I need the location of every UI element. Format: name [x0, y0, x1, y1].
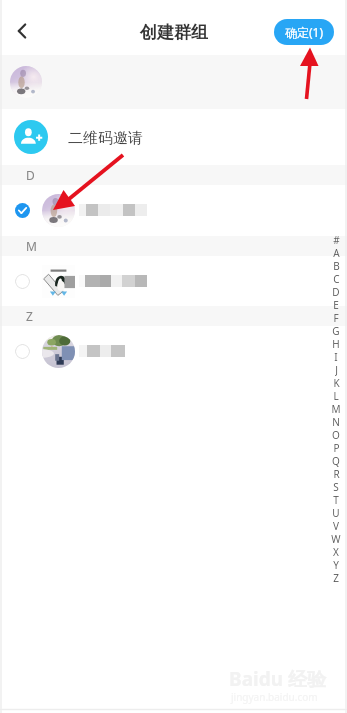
button[interactable]: Back [6, 15, 38, 47]
staticText: M [331, 402, 341, 415]
staticText: Baidu 经验 [229, 666, 326, 692]
button[interactable]: C [328, 272, 344, 285]
button[interactable]: A [328, 246, 344, 259]
staticText: Z [26, 308, 33, 324]
staticText: # [333, 233, 340, 246]
staticText: C [333, 272, 340, 285]
staticText: A [333, 246, 340, 259]
staticText: E [333, 298, 339, 311]
button[interactable]: R [328, 467, 344, 480]
button[interactable]: 二维码邀请 [0, 109, 347, 165]
button[interactable]: N [328, 415, 344, 428]
staticText: L [333, 389, 339, 402]
button[interactable]: J [328, 363, 344, 376]
button[interactable]: G [328, 324, 344, 337]
staticText: Y [333, 558, 339, 571]
staticText: K [333, 376, 340, 389]
button[interactable]: W [328, 532, 344, 545]
staticText: D [26, 167, 35, 183]
button[interactable]: T [328, 493, 344, 506]
button[interactable]: S [328, 480, 344, 493]
button[interactable]: F [328, 311, 344, 324]
button[interactable]: O [328, 428, 344, 441]
button[interactable]: X [328, 545, 344, 558]
button[interactable]: M [328, 402, 344, 415]
staticText: jingyan.baidu.com [231, 690, 318, 704]
staticText: 确定(1) [285, 24, 324, 40]
button[interactable]: L [328, 389, 344, 402]
button[interactable]: Z [328, 571, 344, 584]
staticText: Q [332, 454, 340, 467]
button[interactable]: I [328, 350, 344, 363]
button[interactable]: Remove selected member [10, 66, 42, 98]
staticText: H [332, 337, 340, 350]
button[interactable] [0, 326, 347, 376]
staticText: 创建群组 [140, 22, 208, 43]
staticText: J [335, 363, 338, 376]
staticText: Z [333, 571, 339, 584]
staticText: T [333, 493, 339, 506]
staticText: P [333, 441, 340, 454]
button[interactable]: P [328, 441, 344, 454]
staticText: N [332, 415, 340, 428]
button[interactable] [0, 185, 347, 235]
staticText: I [334, 350, 338, 363]
button[interactable]: Q [328, 454, 344, 467]
staticText: B [333, 259, 340, 272]
staticText: O [332, 428, 340, 441]
staticText: V [333, 519, 339, 532]
button[interactable]: H [328, 337, 344, 350]
button[interactable]: U [328, 506, 344, 519]
staticText: 二维码邀请 [68, 129, 143, 148]
staticText: G [332, 324, 340, 337]
staticText: M [26, 238, 37, 254]
button[interactable]: 确定(1) [274, 19, 334, 45]
button[interactable] [0, 256, 347, 306]
button[interactable]: K [328, 376, 344, 389]
staticText: F [333, 311, 339, 324]
staticText: W [331, 532, 341, 545]
staticText: R [333, 467, 340, 480]
button[interactable]: Y [328, 558, 344, 571]
button[interactable]: D [328, 285, 344, 298]
staticText: D [332, 285, 340, 298]
button[interactable]: V [328, 519, 344, 532]
button[interactable]: B [328, 259, 344, 272]
staticText: S [333, 480, 339, 493]
button[interactable]: E [328, 298, 344, 311]
button[interactable]: # [328, 233, 344, 246]
staticText: U [332, 506, 340, 519]
staticText: X [333, 545, 339, 558]
